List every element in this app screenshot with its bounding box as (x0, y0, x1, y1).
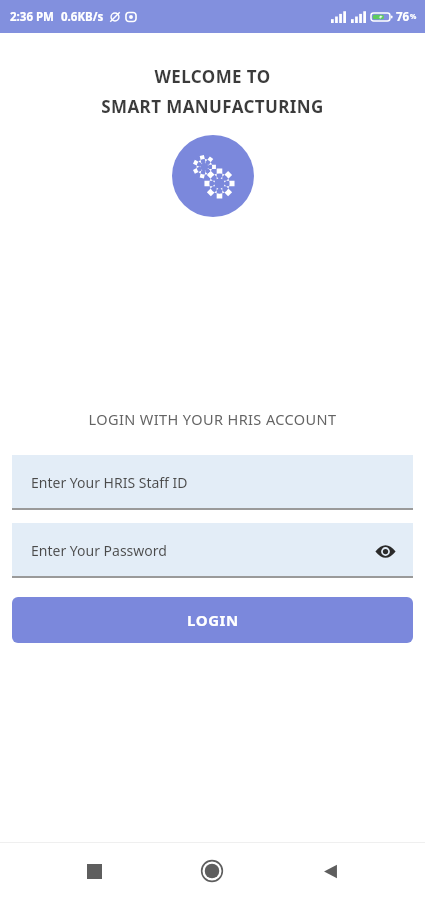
button[interactable]: Back (307, 848, 353, 894)
staticText: % (410, 12, 417, 22)
staticText: LOGIN WITH YOUR HRIS ACCOUNT (0, 409, 425, 429)
other: Smart Manufacturing logo (172, 135, 254, 217)
staticText: 0.6KB/s (61, 9, 104, 25)
staticText: SMART MANUFACTURING (0, 95, 425, 118)
button[interactable]: LOGIN (12, 597, 413, 643)
button[interactable]: Recent apps (71, 848, 117, 894)
button[interactable]: Home (189, 848, 235, 894)
staticText: LOGIN (187, 610, 239, 630)
staticText: 76 (396, 9, 410, 25)
staticText: 2:36 PM (10, 9, 54, 25)
button[interactable]: Show password (370, 536, 400, 566)
staticText: Enter Your Password (31, 541, 167, 560)
button[interactable]: Enter Your HRIS Staff ID (12, 455, 413, 510)
staticText: WELCOME TO (0, 65, 425, 88)
staticText: Enter Your HRIS Staff ID (31, 473, 188, 492)
button[interactable]: Enter Your Password (12, 523, 413, 578)
